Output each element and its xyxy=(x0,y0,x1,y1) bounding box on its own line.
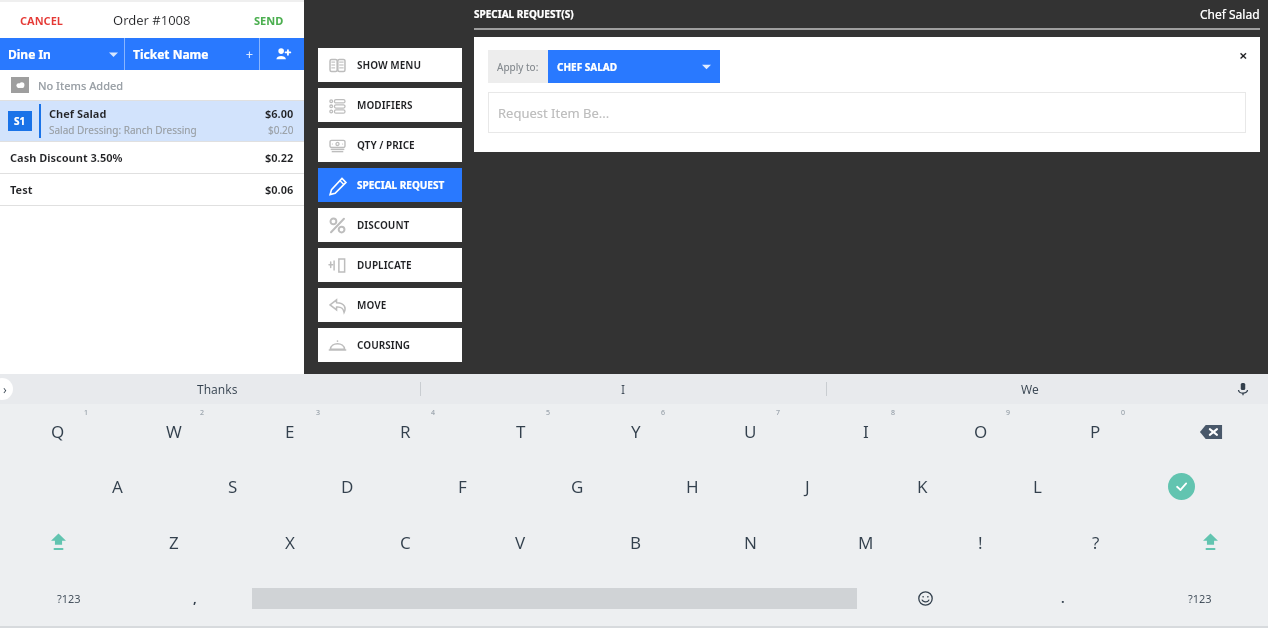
staticText: Chef Salad xyxy=(1200,6,1260,22)
button[interactable]: Expand xyxy=(0,378,13,400)
staticText: No Items Added xyxy=(38,78,124,93)
button[interactable]: F xyxy=(405,459,520,514)
button[interactable]: M xyxy=(808,514,923,570)
staticText: Salad Dressing: Ranch Dressing xyxy=(49,123,197,137)
staticText: N xyxy=(744,531,757,554)
staticText: R xyxy=(400,420,411,443)
button[interactable]: Dine In xyxy=(0,38,124,70)
button[interactable]: CHEF SALAD xyxy=(548,50,720,83)
button[interactable]: I xyxy=(421,374,826,404)
button[interactable]: Request Item Be... xyxy=(488,92,1246,133)
button[interactable]: A xyxy=(59,459,175,514)
button[interactable]: Thanks xyxy=(14,374,420,404)
staticText: 8 xyxy=(891,408,896,418)
button[interactable]: SEND xyxy=(248,9,290,32)
button[interactable]: Test xyxy=(0,174,304,205)
button[interactable]: No Items Added xyxy=(0,70,304,100)
button[interactable]: Shift xyxy=(1153,514,1268,570)
staticText: , xyxy=(193,589,197,607)
button[interactable]: D xyxy=(290,459,405,514)
staticText: Y xyxy=(631,420,641,443)
staticText: DISCOUNT xyxy=(357,218,410,232)
button[interactable]: Close xyxy=(1233,39,1254,71)
button[interactable]: Backspace xyxy=(1153,404,1268,459)
button[interactable]: SHOW MENU xyxy=(318,48,462,82)
button[interactable]: U xyxy=(693,404,808,459)
button[interactable]: DUPLICATE xyxy=(318,248,462,282)
staticText: × xyxy=(1239,45,1248,65)
staticText: SPECIAL REQUEST xyxy=(357,178,445,192)
staticText: 2 xyxy=(200,408,205,418)
staticText: Dine In xyxy=(8,46,51,62)
button[interactable]: J xyxy=(750,459,865,514)
button[interactable]: G xyxy=(520,459,635,514)
button[interactable]: Z xyxy=(116,514,232,570)
staticText: CANCEL xyxy=(20,13,63,28)
button[interactable]: W xyxy=(116,404,232,459)
staticText: O xyxy=(974,420,988,443)
button[interactable]: COURSING xyxy=(318,328,462,362)
staticText: ? xyxy=(1092,531,1100,554)
button[interactable]: MODIFIERS xyxy=(318,88,462,122)
staticText: QTY / PRICE xyxy=(357,138,415,152)
staticText: I xyxy=(863,420,869,443)
button[interactable]: SPECIAL REQUEST xyxy=(318,168,462,202)
button[interactable]: P xyxy=(1038,404,1153,459)
button[interactable]: O xyxy=(923,404,1038,459)
button[interactable]: S1 xyxy=(0,101,304,141)
staticText: ?123 xyxy=(1188,591,1212,606)
staticText: H xyxy=(686,475,699,498)
staticText: 6 xyxy=(661,408,666,418)
button[interactable]: E xyxy=(232,404,348,459)
button[interactable]: T xyxy=(463,404,578,459)
button[interactable]: C xyxy=(348,514,463,570)
button[interactable]: Emoji xyxy=(857,570,994,626)
button[interactable]: ?123 xyxy=(1131,570,1268,626)
button[interactable]: I xyxy=(808,404,923,459)
button[interactable]: S xyxy=(175,459,290,514)
button[interactable]: Ticket Name xyxy=(125,38,259,70)
staticText: 0 xyxy=(1121,408,1126,418)
button[interactable]: B xyxy=(578,514,693,570)
staticText: SHOW MENU xyxy=(357,58,421,72)
button[interactable]: H xyxy=(635,459,750,514)
button[interactable]: N xyxy=(693,514,808,570)
staticText: + xyxy=(246,46,253,62)
staticText: I xyxy=(621,381,626,397)
staticText: 7 xyxy=(776,408,781,418)
staticText: We xyxy=(1021,381,1039,397)
button[interactable]: MOVE xyxy=(318,288,462,322)
button[interactable]: ? xyxy=(1038,514,1153,570)
button[interactable]: V xyxy=(463,514,578,570)
staticText: S1 xyxy=(14,114,26,128)
staticText: $6.00 xyxy=(265,106,294,121)
staticText: Apply to: xyxy=(497,60,539,74)
button[interactable]: Cash Discount 3.50% xyxy=(0,142,304,173)
staticText: Request Item Be... xyxy=(498,104,610,122)
button[interactable]: We xyxy=(827,374,1232,404)
button[interactable]: Q xyxy=(0,404,116,459)
button[interactable]: QTY / PRICE xyxy=(318,128,462,162)
staticText: X xyxy=(285,531,295,554)
button[interactable]: K xyxy=(865,459,980,514)
button[interactable]: ?123 xyxy=(0,570,138,626)
button[interactable]: Voice input xyxy=(1232,378,1254,400)
staticText: SEND xyxy=(254,13,284,28)
button[interactable]: Enter xyxy=(1095,459,1268,514)
button[interactable]: Space xyxy=(252,570,857,626)
button[interactable]: R xyxy=(348,404,463,459)
button[interactable]: DISCOUNT xyxy=(318,208,462,242)
button[interactable]: X xyxy=(232,514,348,570)
button[interactable]: Add guest xyxy=(260,38,304,70)
button[interactable]: , xyxy=(138,570,252,626)
button[interactable]: CANCEL xyxy=(14,9,69,32)
button[interactable]: . xyxy=(994,570,1131,626)
staticText: . xyxy=(1061,589,1065,607)
button[interactable]: L xyxy=(980,459,1095,514)
staticText: W xyxy=(166,420,182,443)
staticText: MOVE xyxy=(357,298,387,312)
button[interactable]: Y xyxy=(578,404,693,459)
button[interactable]: ! xyxy=(923,514,1038,570)
button[interactable]: Shift xyxy=(0,514,116,570)
staticText: J xyxy=(805,475,810,498)
